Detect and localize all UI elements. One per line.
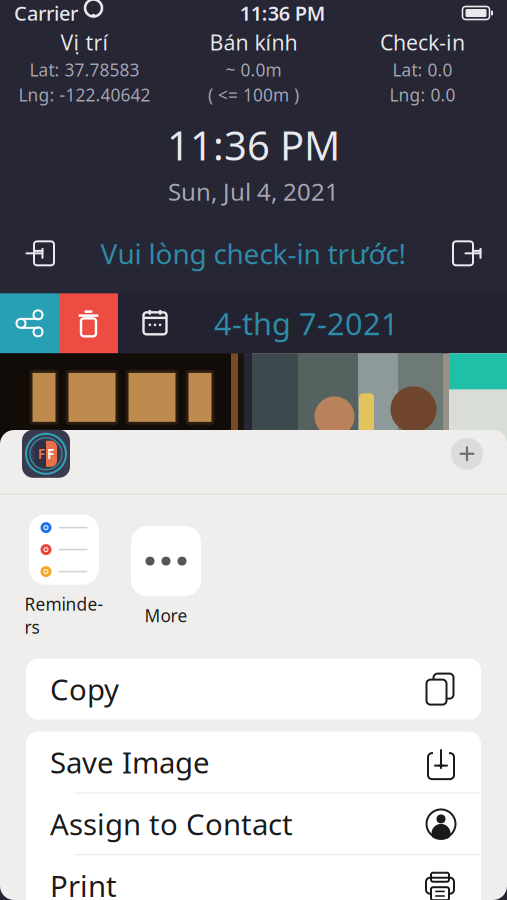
staticText: 4-thg 7-2021 (214, 303, 399, 344)
staticText: F (47, 445, 54, 463)
staticText: 11:36 PM (167, 118, 340, 171)
staticText: 11:36 PM (240, 0, 326, 26)
staticText: Assign to Contact (50, 804, 293, 843)
button[interactable]: Copy (26, 659, 481, 720)
staticText: Vui lòng check-in trước! (100, 235, 406, 272)
staticText: Sun, Jul 4, 2021 (168, 175, 339, 207)
button[interactable]: Close (445, 432, 489, 476)
staticText: Vị trí (60, 28, 108, 56)
staticText: Carrier (14, 0, 78, 26)
staticText: More (144, 604, 187, 627)
staticText: Print (50, 866, 117, 900)
button[interactable]: Check in (10, 231, 64, 275)
staticText: Lng: -122.40642 (18, 83, 150, 106)
staticText: ( <= 100m ) (208, 83, 299, 106)
button[interactable]: Share (0, 293, 59, 353)
button[interactable]: 4-thg 7-2021 (118, 293, 507, 353)
staticText: Save Image (50, 743, 210, 782)
button[interactable]: Delete (59, 293, 118, 353)
button[interactable]: Check out (443, 231, 497, 275)
button[interactable]: Assign to Contact (26, 793, 481, 854)
staticText: F (38, 445, 45, 463)
button[interactable]: More (126, 526, 206, 627)
staticText: Bán kính (209, 28, 297, 56)
button[interactable]: Reminders (24, 515, 104, 639)
button[interactable]: Save Image (26, 732, 481, 793)
staticText: Lat: 37.78583 (29, 58, 139, 81)
staticText: Lat: 0.0 (392, 58, 452, 81)
staticText: Reminders (24, 593, 103, 639)
staticText: IL BISONTE (60, 457, 183, 487)
staticText: Copy (50, 670, 119, 709)
staticText: ~ 0.0m (225, 58, 281, 81)
staticText: Check-in (380, 28, 465, 56)
button[interactable]: Print (26, 855, 481, 900)
staticText: Lng: 0.0 (389, 83, 455, 106)
